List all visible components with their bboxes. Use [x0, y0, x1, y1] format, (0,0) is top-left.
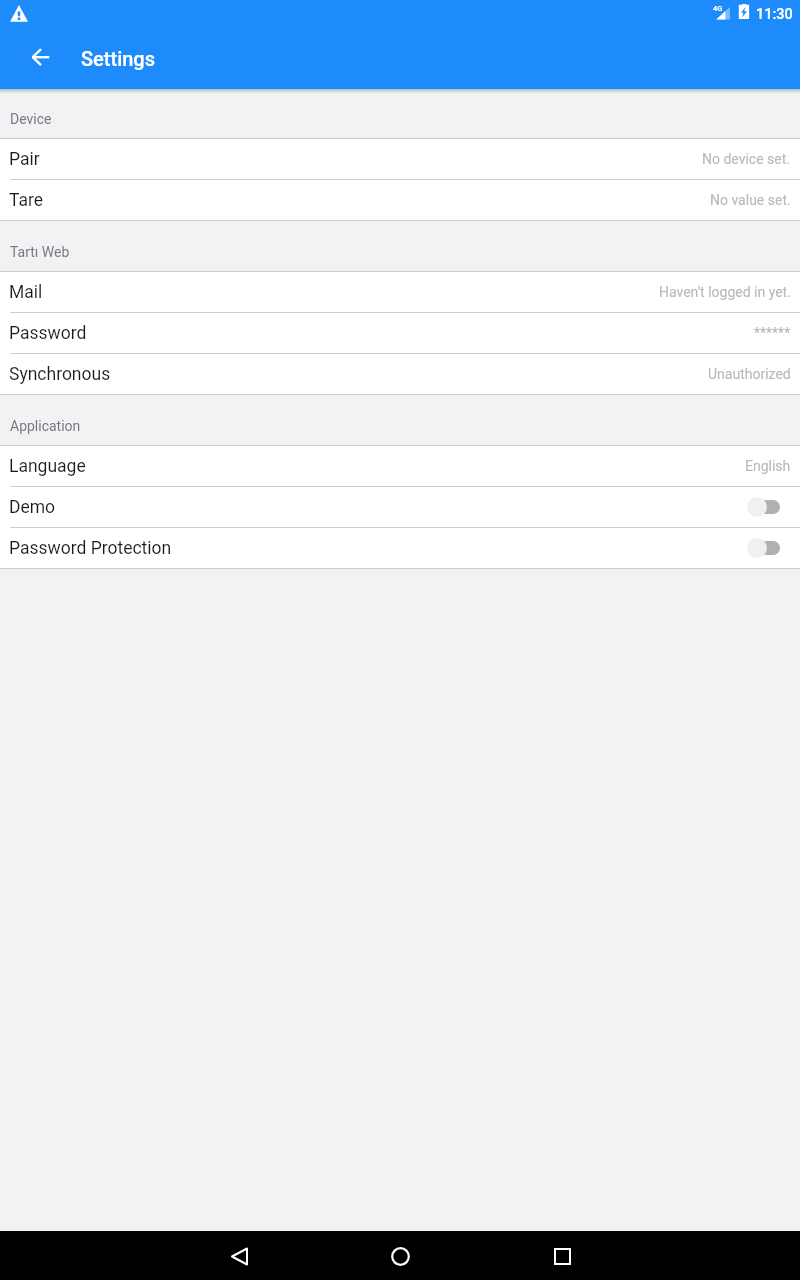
staticText: No device set.: [702, 151, 791, 167]
staticText: Device: [10, 111, 52, 127]
staticText: English: [745, 458, 791, 474]
staticText: ******: [754, 325, 791, 341]
button[interactable]: Password: [0, 313, 800, 353]
staticText: Language: [9, 456, 86, 477]
button[interactable]: Password Protection: [0, 528, 800, 568]
staticText: Synchronous: [9, 364, 111, 385]
staticText: No value set.: [710, 192, 791, 208]
staticText: 11:30: [756, 6, 793, 23]
staticText: Tartı Web: [10, 244, 70, 260]
staticText: Password: [9, 323, 87, 344]
button[interactable]: Demo: [0, 487, 800, 527]
button[interactable]: Synchronous: [0, 354, 800, 394]
button[interactable]: Pair: [0, 139, 800, 179]
staticText: Demo: [9, 497, 56, 518]
button[interactable]: Mail: [0, 272, 800, 312]
staticText: Tare: [9, 190, 44, 211]
staticText: Pair: [9, 149, 40, 170]
staticText: Password Protection: [9, 538, 172, 559]
button[interactable]: Back: [215, 1232, 263, 1280]
staticText: Settings: [81, 47, 156, 70]
button[interactable]: Tare: [0, 180, 800, 220]
staticText: Application: [10, 418, 81, 434]
button[interactable]: Recent apps: [538, 1232, 586, 1280]
button[interactable]: Language: [0, 446, 800, 486]
staticText: 4G: [713, 4, 723, 13]
staticText: Mail: [9, 282, 43, 303]
staticText: Haven't logged in yet.: [659, 284, 791, 300]
button[interactable]: Home: [376, 1232, 424, 1280]
staticText: Unauthorized: [708, 366, 791, 382]
button[interactable]: Back: [16, 34, 64, 82]
